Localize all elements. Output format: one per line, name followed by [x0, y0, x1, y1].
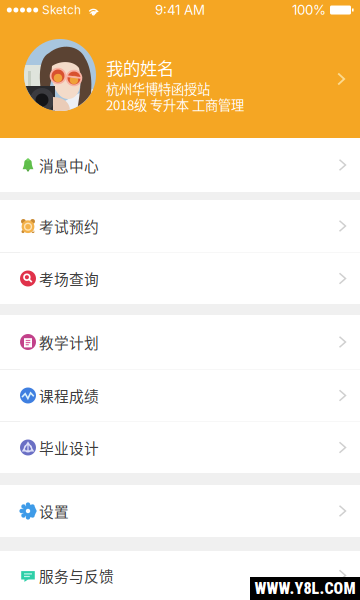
button[interactable]: 消息中心	[0, 138, 360, 192]
staticText: 9:41 AM	[155, 2, 205, 18]
staticText: 2018级 专升本 工商管理	[106, 95, 244, 114]
button[interactable]: 设置	[0, 485, 360, 537]
staticText: 我的姓名	[106, 55, 174, 80]
staticText: 教学计划	[39, 331, 99, 353]
button[interactable]: 考试预约	[0, 200, 360, 252]
staticText: 100%	[292, 2, 326, 18]
button[interactable]: 考场查询	[0, 253, 360, 304]
button[interactable]: 毕业设计	[0, 422, 360, 473]
staticText: 消息中心	[39, 154, 99, 176]
staticText: 设置	[39, 500, 69, 522]
staticText: 服务与反馈	[39, 565, 114, 586]
button[interactable]: 教学计划	[0, 315, 360, 369]
button[interactable]: 服务与反馈	[0, 551, 360, 600]
staticText: 课程成绩	[39, 385, 99, 406]
button[interactable]: 我的姓名	[0, 20, 360, 138]
staticText: 考试预约	[39, 215, 99, 237]
staticText: 毕业设计	[39, 437, 99, 458]
button[interactable]: 课程成绩	[0, 370, 360, 421]
staticText: 杭州华博特函授站	[106, 79, 210, 98]
staticText: 考场查询	[39, 268, 99, 289]
staticText: Sketch	[42, 3, 81, 17]
staticText: WWW.Y8L.COM	[254, 579, 355, 598]
